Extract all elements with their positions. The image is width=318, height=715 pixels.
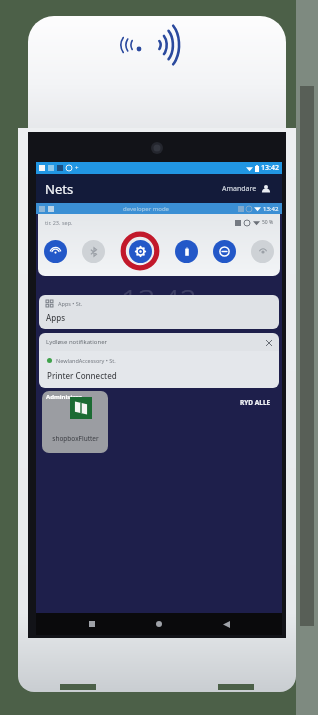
staticText: Lydløse notifikationer <box>46 338 108 346</box>
button[interactable]: Bluetooth <box>82 240 105 263</box>
button[interactable]: NewlandAccessory • St. <box>39 351 279 388</box>
other: Account <box>261 184 271 194</box>
button[interactable]: Battery saver <box>175 240 198 263</box>
staticText: RYD ALLE <box>240 398 271 407</box>
button[interactable]: RYD ALLE <box>237 395 274 410</box>
button[interactable]: Recent apps <box>81 613 103 635</box>
button[interactable]: Do not disturb <box>213 240 236 263</box>
staticText: 50 % <box>262 219 274 226</box>
staticText: Nets <box>45 180 74 198</box>
staticText: 13:42 <box>121 279 197 320</box>
button[interactable]: Hotspot <box>251 240 274 263</box>
staticText: Apps <box>46 312 66 323</box>
button[interactable]: Apps • St. <box>39 295 279 329</box>
button[interactable]: Amandare <box>220 182 273 196</box>
staticText: Printer Connected <box>47 370 117 381</box>
staticText: Administrer <box>46 393 82 401</box>
staticText: 13:42 <box>261 163 279 173</box>
button[interactable]: Back <box>215 613 237 635</box>
staticText: + <box>75 164 79 172</box>
staticText: Apps • St. <box>58 300 83 307</box>
staticText: tir. 23. sep. <box>45 219 73 226</box>
button[interactable]: Home <box>148 613 170 635</box>
staticText: Amandare <box>222 184 257 194</box>
button[interactable]: Administrer <box>42 391 108 453</box>
button[interactable]: Settings <box>129 240 152 263</box>
button[interactable]: Lydløse notifikationer <box>39 333 279 351</box>
button[interactable]: Wi-Fi <box>44 240 67 263</box>
staticText: shopboxFlutter <box>52 434 99 443</box>
staticText: developer mode <box>123 205 169 213</box>
button[interactable]: Dismiss <box>263 337 274 348</box>
staticText: 13:42 <box>263 205 279 213</box>
staticText: NewlandAccessory • St. <box>56 357 116 364</box>
